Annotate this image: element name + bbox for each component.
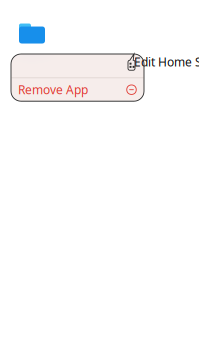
button[interactable]: Edit Home Screen — [11, 54, 144, 77]
button[interactable]: Remove App — [11, 78, 144, 101]
staticText: Remove App — [18, 82, 88, 98]
button[interactable]: Files — [14, 17, 50, 53]
